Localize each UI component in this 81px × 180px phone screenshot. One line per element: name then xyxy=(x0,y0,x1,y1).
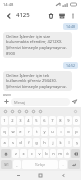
staticText: 14:48 xyxy=(66,24,75,29)
button[interactable]: Keyboard tool 6 xyxy=(37,108,44,115)
button[interactable]: Back xyxy=(3,10,14,21)
staticText: j xyxy=(52,140,54,145)
staticText: w xyxy=(11,129,15,134)
button[interactable]: Home xyxy=(36,171,45,180)
button[interactable]: 8 xyxy=(57,116,64,125)
staticText: a xyxy=(3,140,6,145)
staticText: ö xyxy=(66,151,69,156)
button[interactable]: t xyxy=(33,127,40,136)
staticText: 0 xyxy=(75,118,78,123)
button[interactable]: l xyxy=(65,138,72,147)
button[interactable]: x xyxy=(20,149,27,158)
staticText: 14:48 xyxy=(3,2,14,7)
button[interactable]: 4 xyxy=(25,116,32,125)
staticText: Mesaj xyxy=(14,100,26,105)
staticText: 4 xyxy=(27,118,30,123)
button[interactable]: 6 xyxy=(41,116,48,125)
staticText: p xyxy=(75,129,78,134)
button[interactable]: Keyboard settings xyxy=(72,108,79,115)
staticText: h xyxy=(43,140,46,145)
button[interactable]: !#1 xyxy=(1,160,12,169)
button[interactable]: Keyboard tool 1 xyxy=(2,108,9,115)
staticText: b xyxy=(45,151,48,156)
staticText: 5 xyxy=(35,118,38,123)
button[interactable]: Shift xyxy=(1,149,11,158)
button[interactable]: b xyxy=(43,149,49,158)
staticText: 9 xyxy=(67,118,70,123)
button[interactable]: h xyxy=(41,138,48,147)
button[interactable]: z xyxy=(12,149,19,158)
button[interactable]: f xyxy=(25,138,32,147)
staticText: c xyxy=(31,151,33,156)
button[interactable]: 5 xyxy=(33,116,40,125)
staticText: ş xyxy=(76,140,78,145)
staticText: 6 xyxy=(43,118,46,123)
button[interactable]: k xyxy=(57,138,64,147)
staticText: v xyxy=(38,151,41,156)
button[interactable]: More options xyxy=(67,10,78,21)
button[interactable]: ş xyxy=(73,138,80,147)
button[interactable]: e xyxy=(17,127,24,136)
button[interactable]: s xyxy=(9,138,16,147)
button[interactable]: Recents xyxy=(14,171,23,180)
button[interactable]: c xyxy=(28,149,35,158)
button[interactable]: d xyxy=(17,138,24,147)
button[interactable]: 3 xyxy=(17,116,24,125)
button[interactable]: y xyxy=(41,127,48,136)
button[interactable]: o xyxy=(65,127,72,136)
button[interactable]: w xyxy=(9,127,16,136)
staticText: k xyxy=(59,140,62,145)
staticText: g xyxy=(35,140,38,145)
button[interactable]: p xyxy=(73,127,80,136)
button[interactable]: Delete xyxy=(45,10,56,21)
staticText: 7 xyxy=(51,118,54,123)
button[interactable]: a xyxy=(1,138,8,147)
button[interactable]: ı xyxy=(57,127,64,136)
button[interactable]: Keyboard tool 4 xyxy=(23,108,30,115)
button[interactable]: 2 xyxy=(9,116,16,125)
button[interactable]: Archive xyxy=(56,10,67,21)
button[interactable]: 9 xyxy=(65,116,72,125)
button[interactable]: r xyxy=(25,127,32,136)
staticText: . xyxy=(62,162,64,167)
button[interactable]: 14:48 xyxy=(63,23,78,30)
button[interactable]: v xyxy=(36,149,42,158)
staticText: 8 xyxy=(59,118,62,123)
button[interactable]: g xyxy=(33,138,40,147)
staticText: ı xyxy=(60,129,62,134)
button[interactable]: Send xyxy=(70,97,79,106)
button[interactable]: Enter xyxy=(68,160,80,169)
staticText: u xyxy=(51,129,54,134)
staticText: 14:52 xyxy=(66,63,75,68)
button[interactable]: Keyboard tool 3 xyxy=(16,108,23,115)
button[interactable]: Back xyxy=(59,171,68,180)
staticText: 8900 xyxy=(3,93,12,96)
button[interactable]: q xyxy=(1,127,8,136)
button[interactable]: ö xyxy=(64,149,70,158)
button[interactable]: , xyxy=(13,160,21,169)
button[interactable]: j xyxy=(49,138,56,147)
button[interactable]: Türkçe xyxy=(22,160,58,169)
button[interactable]: Backspace xyxy=(71,149,80,158)
button[interactable]: n xyxy=(50,149,56,158)
button[interactable]: Add attachment xyxy=(2,97,11,106)
button[interactable]: Mesaj xyxy=(11,98,70,106)
staticText: d xyxy=(19,140,22,145)
button[interactable]: 0 xyxy=(73,116,80,125)
button[interactable]: 1 xyxy=(1,116,8,125)
button[interactable]: Online İşlemler için size bulunmakta efe… xyxy=(3,32,72,58)
staticText: 4125 xyxy=(16,11,30,19)
staticText: e xyxy=(19,129,22,134)
button[interactable]: Keyboard tool 5 xyxy=(30,108,37,115)
button[interactable]: Online İşlemler için tek kullanımlık şif… xyxy=(3,71,72,91)
staticText: f xyxy=(28,140,30,145)
button[interactable]: m xyxy=(57,149,63,158)
staticText: q xyxy=(3,129,6,134)
staticText: !#1 xyxy=(4,163,9,167)
staticText: r xyxy=(28,129,30,134)
button[interactable]: Keyboard tool 2 xyxy=(9,108,16,115)
button[interactable]: 7 xyxy=(49,116,56,125)
button[interactable]: u xyxy=(49,127,56,136)
button[interactable]: 14:52 xyxy=(63,62,78,69)
